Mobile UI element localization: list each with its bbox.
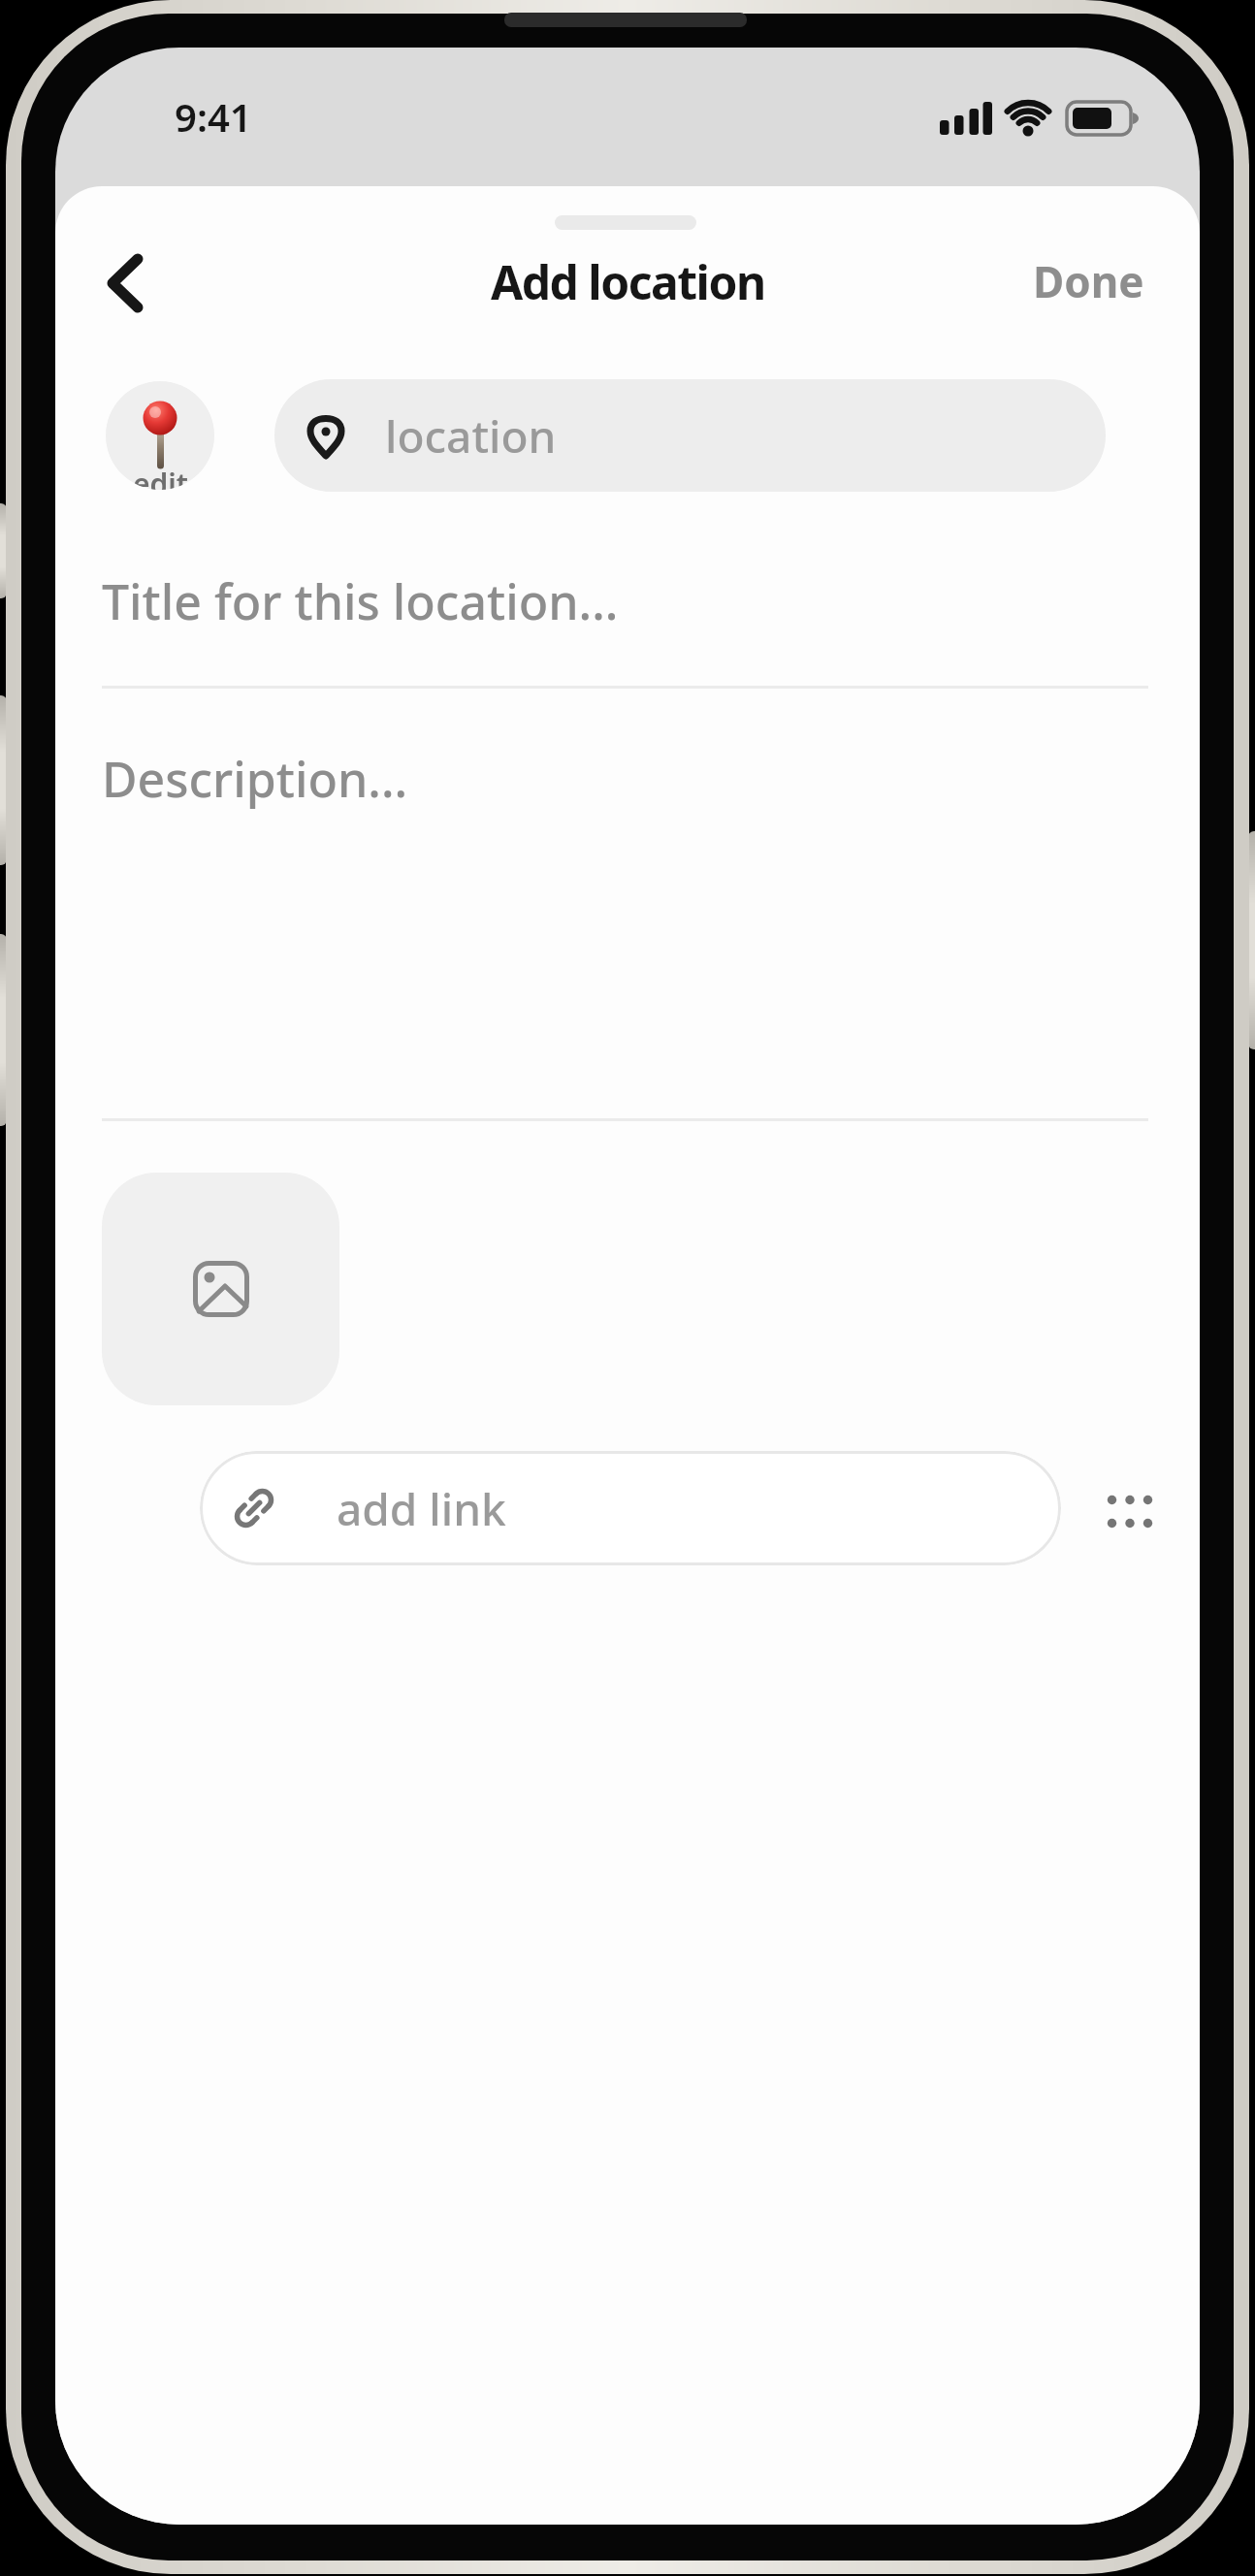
staticText: 9:41	[175, 90, 252, 139]
button[interactable]: add link	[200, 1451, 1061, 1565]
staticText: add link	[337, 1478, 506, 1539]
staticText: Add location	[491, 250, 765, 313]
button[interactable]: Done	[970, 238, 1144, 325]
button[interactable]	[87, 238, 165, 325]
staticText: edit	[133, 464, 188, 490]
button[interactable]	[102, 1173, 339, 1405]
button[interactable]: location	[274, 379, 1106, 492]
staticText: Description...	[102, 746, 408, 812]
button[interactable]	[1086, 1471, 1174, 1549]
button[interactable]: edit	[106, 381, 214, 490]
staticText: location	[385, 405, 557, 467]
staticText: Title for this location...	[102, 568, 619, 634]
staticText: Done	[1033, 252, 1144, 310]
